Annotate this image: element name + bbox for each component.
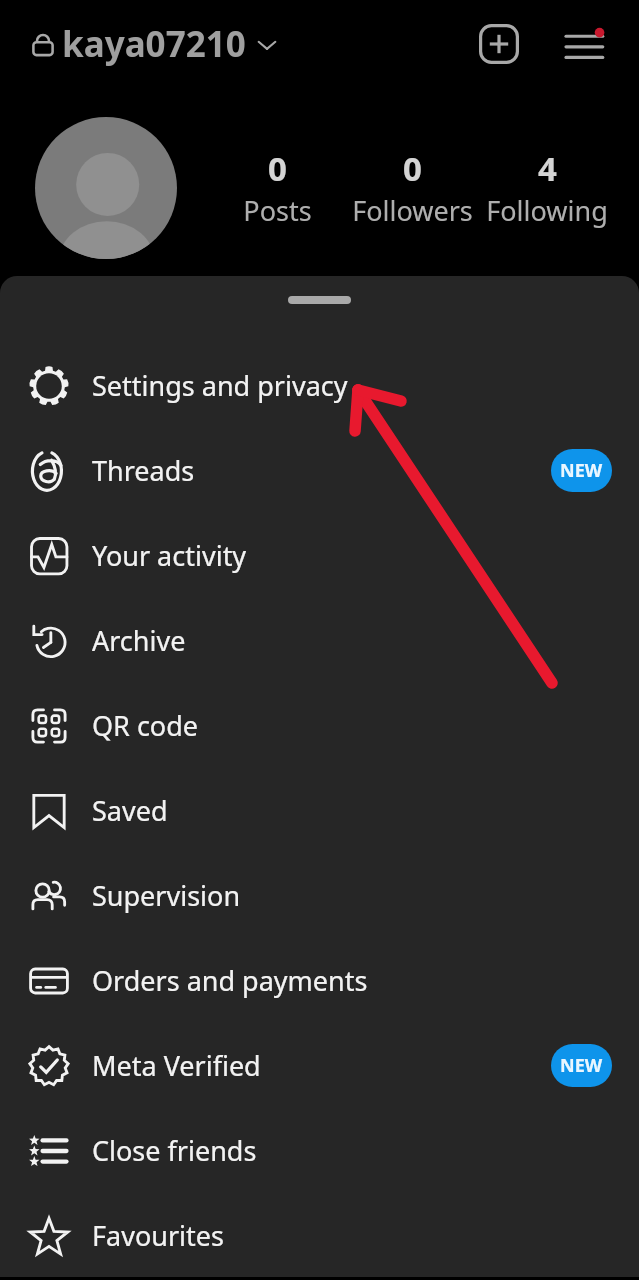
button[interactable]: Create xyxy=(473,18,525,70)
button[interactable]: 4 xyxy=(462,146,632,229)
button[interactable]: kaya07210 xyxy=(28,0,278,88)
staticText: Your activity xyxy=(92,537,247,574)
staticText: Meta Verified xyxy=(92,1047,261,1084)
staticText: Posts xyxy=(243,192,312,229)
button[interactable]: Your activity xyxy=(0,513,639,598)
staticText: Close friends xyxy=(92,1132,257,1169)
staticText: 0 xyxy=(268,146,287,191)
staticText: QR code xyxy=(92,707,199,744)
button[interactable]: Orders and payments xyxy=(0,938,639,1023)
button[interactable]: Saved xyxy=(0,768,639,853)
button[interactable]: Archive xyxy=(0,598,639,683)
staticText: Supervision xyxy=(92,877,241,914)
staticText: Followers xyxy=(352,192,473,229)
staticText: Settings and privacy xyxy=(92,367,348,404)
button[interactable]: QR code xyxy=(0,683,639,768)
staticText: Orders and payments xyxy=(92,962,368,999)
staticText: 4 xyxy=(538,146,557,191)
button[interactable]: 0 xyxy=(192,146,362,229)
staticText: Following xyxy=(486,192,608,229)
button[interactable]: Meta Verified xyxy=(0,1023,639,1108)
staticText: NEW xyxy=(560,458,603,483)
staticText: Archive xyxy=(92,622,186,659)
staticText: kaya07210 xyxy=(62,20,246,68)
button[interactable]: Favourites xyxy=(0,1193,639,1278)
staticText: Threads xyxy=(92,452,195,489)
staticText: Saved xyxy=(92,792,168,829)
button[interactable]: Close friends xyxy=(0,1108,639,1193)
staticText: 0 xyxy=(403,146,422,191)
button[interactable]: 0 xyxy=(327,146,497,229)
staticText: NEW xyxy=(560,1053,603,1078)
button[interactable]: Threads xyxy=(0,428,639,513)
button[interactable]: Settings and privacy xyxy=(0,343,639,428)
button[interactable]: Supervision xyxy=(0,853,639,938)
button[interactable]: Menu xyxy=(556,21,610,75)
staticText: Favourites xyxy=(92,1217,224,1254)
